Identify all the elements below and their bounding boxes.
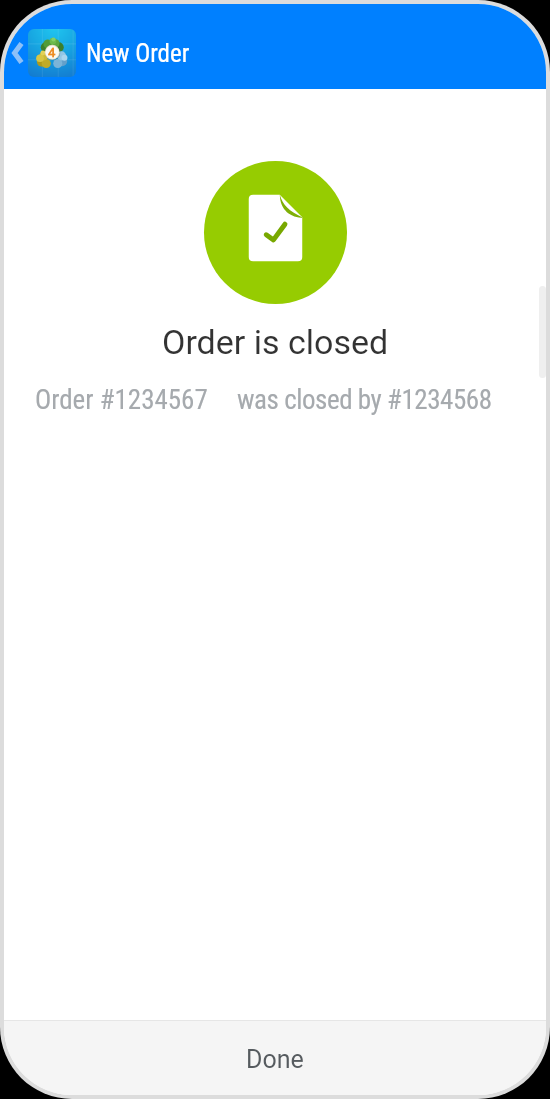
staticText: Order #1234567 [35,384,208,416]
staticText: was closed by #1234568 [237,384,492,416]
button[interactable]: App icon [28,29,76,77]
staticText: Done [246,1045,304,1074]
button[interactable]: Done [4,1021,546,1095]
staticText: Order is closed [162,322,389,362]
button[interactable]: Back [10,16,25,89]
staticText: New Order [86,39,190,68]
staticText: 4 [48,45,56,60]
